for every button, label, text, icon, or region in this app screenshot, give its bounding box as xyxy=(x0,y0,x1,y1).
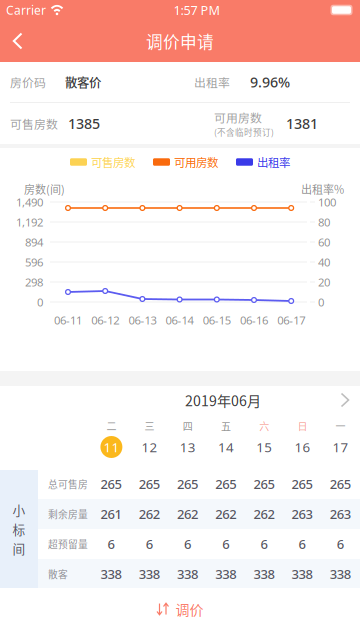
staticText: 调价 xyxy=(175,599,203,619)
staticText: 9.96% xyxy=(250,72,290,92)
staticText: 262 xyxy=(253,505,274,523)
staticText: 日 xyxy=(297,419,307,433)
staticText: 可用房数 xyxy=(214,109,262,126)
staticText: 265 xyxy=(101,475,122,493)
staticText: 100 xyxy=(318,194,336,210)
staticText: 六 xyxy=(259,419,269,433)
staticText: 06-11 xyxy=(54,312,82,328)
button[interactable]: 返回 xyxy=(0,20,37,62)
staticText: 1,192 xyxy=(16,214,43,230)
staticText: 6 xyxy=(299,535,306,553)
staticText: 263 xyxy=(292,505,313,523)
staticText: 6 xyxy=(146,535,153,553)
staticText: 06-17 xyxy=(277,312,305,328)
staticText: 338 xyxy=(101,565,122,583)
staticText: 间 xyxy=(12,539,25,557)
staticText: 262 xyxy=(177,505,198,523)
staticText: 894 xyxy=(25,234,43,250)
staticText: 1,490 xyxy=(16,194,43,210)
staticText: 出租率 xyxy=(194,73,230,91)
staticText: 可用房数 xyxy=(174,154,218,170)
staticText: 298 xyxy=(25,274,43,290)
staticText: 1:57 PM xyxy=(173,1,219,19)
staticText: 12 xyxy=(142,438,158,456)
button[interactable]: 二 xyxy=(92,414,130,464)
staticText: 小 xyxy=(12,500,25,519)
staticText: 0 xyxy=(37,294,43,310)
staticText: 一 xyxy=(336,419,346,433)
staticText: 06-13 xyxy=(128,312,156,328)
staticText: 263 xyxy=(330,505,351,523)
staticText: 265 xyxy=(139,475,160,493)
staticText: 散客价 xyxy=(65,73,101,91)
staticText: 0 xyxy=(318,294,324,310)
staticText: 60 xyxy=(318,234,330,250)
button[interactable]: 六 xyxy=(245,414,283,464)
staticText: 261 xyxy=(101,505,122,523)
staticText: 房数(间) xyxy=(24,181,65,197)
staticText: 房价码 xyxy=(10,73,46,91)
staticText: Carrier xyxy=(6,2,46,18)
staticText: 五 xyxy=(221,419,231,433)
staticText: 三 xyxy=(145,419,155,433)
button[interactable]: 五 xyxy=(207,414,245,464)
staticText: 16 xyxy=(294,438,310,456)
staticText: 1385 xyxy=(68,114,100,133)
staticText: 338 xyxy=(253,565,274,583)
staticText: 265 xyxy=(177,475,198,493)
staticText: 6 xyxy=(184,535,191,553)
button[interactable]: 三 xyxy=(130,414,169,464)
staticText: 2019年06月 xyxy=(185,390,261,410)
staticText: 6 xyxy=(108,535,115,553)
staticText: 06-12 xyxy=(91,312,119,328)
staticText: (不含临时预订) xyxy=(214,126,274,138)
staticText: 338 xyxy=(330,565,351,583)
staticText: 338 xyxy=(292,565,313,583)
button[interactable]: 下个月 xyxy=(340,392,360,408)
staticText: 调价申请 xyxy=(146,29,214,53)
staticText: 13 xyxy=(180,438,196,456)
button[interactable]: 日 xyxy=(283,414,321,464)
staticText: 338 xyxy=(139,565,160,583)
staticText: 出租率% xyxy=(301,181,344,197)
staticText: 20 xyxy=(318,274,330,290)
staticText: 剩余房量 xyxy=(48,507,88,521)
staticText: 265 xyxy=(330,475,351,493)
staticText: 596 xyxy=(25,254,43,270)
button[interactable]: 调价 xyxy=(0,588,360,630)
staticText: 262 xyxy=(215,505,236,523)
staticText: 1381 xyxy=(286,114,318,133)
staticText: 80 xyxy=(318,214,330,230)
staticText: 06-16 xyxy=(240,312,268,328)
staticText: 6 xyxy=(337,535,344,553)
staticText: 15 xyxy=(256,438,272,456)
button[interactable]: 四 xyxy=(169,414,207,464)
staticText: 散客 xyxy=(48,567,68,581)
staticText: 338 xyxy=(177,565,198,583)
staticText: 6 xyxy=(222,535,229,553)
button[interactable]: 一 xyxy=(321,414,360,464)
staticText: 标 xyxy=(12,520,25,538)
staticText: 11 xyxy=(103,438,119,456)
staticText: 17 xyxy=(333,438,349,456)
staticText: 总可售房 xyxy=(48,477,88,491)
staticText: 265 xyxy=(215,475,236,493)
staticText: 14 xyxy=(218,438,234,456)
staticText: 265 xyxy=(292,475,313,493)
staticText: 06-15 xyxy=(203,312,231,328)
staticText: 338 xyxy=(215,565,236,583)
staticText: 6 xyxy=(260,535,267,553)
staticText: 06-14 xyxy=(166,312,194,328)
staticText: 265 xyxy=(253,475,274,493)
staticText: 40 xyxy=(318,254,330,270)
staticText: 可售房数 xyxy=(10,115,58,132)
staticText: 出租率 xyxy=(257,154,290,170)
staticText: 四 xyxy=(183,419,193,433)
staticText: 超预留量 xyxy=(48,537,88,551)
staticText: 可售房数 xyxy=(91,154,135,170)
staticText: 262 xyxy=(139,505,160,523)
staticText: 二 xyxy=(106,419,116,433)
